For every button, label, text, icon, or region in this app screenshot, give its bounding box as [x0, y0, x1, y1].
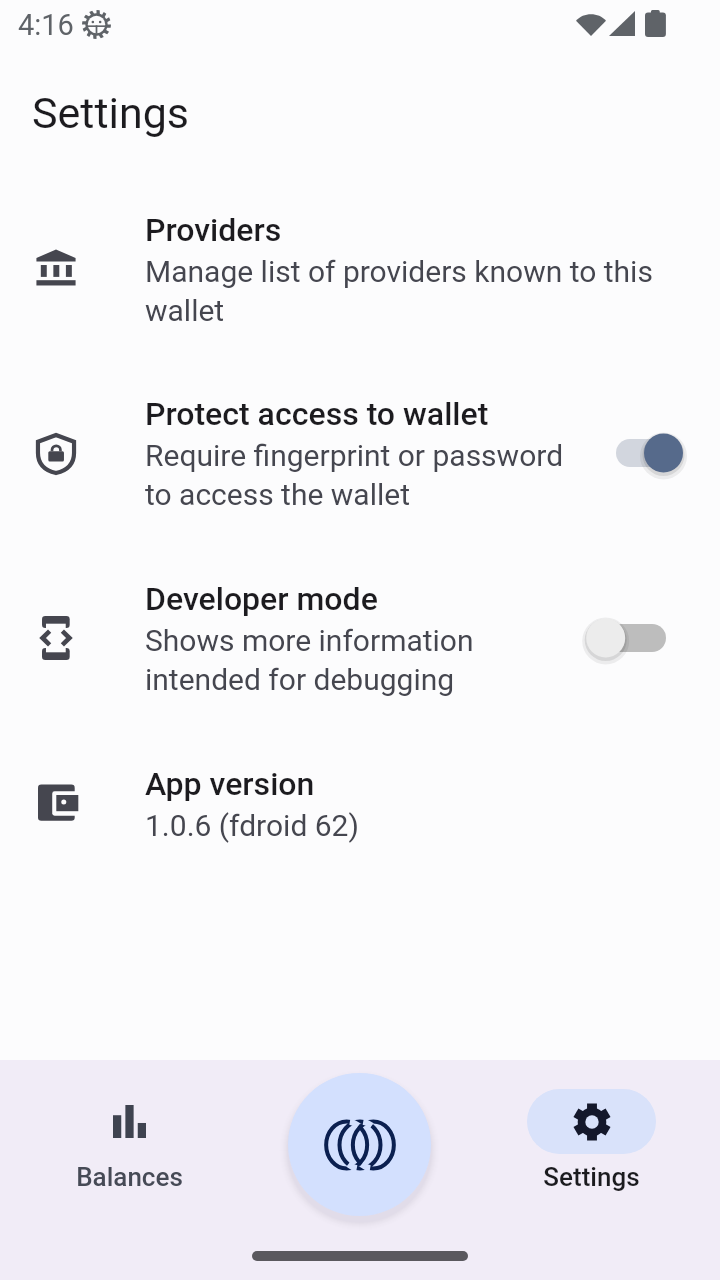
staticText: Require fingerprint or password to acces… [145, 438, 565, 512]
button[interactable]: Switch on [0, 379, 720, 527]
button[interactable]: Switch off [0, 564, 720, 712]
button[interactable]: Taler wallet [288, 1073, 431, 1216]
button[interactable]: Switch off [588, 602, 684, 674]
button[interactable]: Switch on [602, 417, 698, 489]
button[interactable] [0, 728, 720, 876]
button[interactable] [0, 193, 720, 341]
button[interactable]: Balances [65, 1089, 193, 1192]
staticText: Protect access to wallet [145, 395, 489, 433]
staticText: Providers [145, 211, 282, 249]
staticText: Settings [32, 88, 190, 138]
staticText: 4:16 [18, 8, 74, 42]
staticText: Balances [76, 1162, 183, 1192]
staticText: Shows more information intended for debu… [145, 623, 565, 697]
button[interactable]: Settings [527, 1089, 656, 1192]
staticText: Developer mode [145, 580, 378, 618]
staticText: 1.0.6 (fdroid 62) [145, 808, 359, 843]
staticText: App version [145, 765, 315, 803]
staticText: Settings [543, 1162, 640, 1192]
staticText: Manage list of providers known to this w… [145, 254, 655, 328]
